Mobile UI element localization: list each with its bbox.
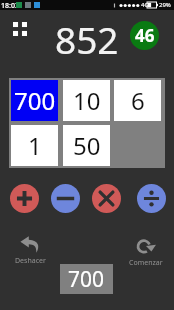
button[interactable]: 6 — [114, 80, 161, 121]
button[interactable]: 700 — [60, 264, 113, 294]
button[interactable]: 50 — [63, 125, 110, 166]
button[interactable]: Apps — [13, 22, 27, 36]
staticText: 10 — [73, 84, 101, 117]
staticText: 700 — [14, 84, 56, 117]
staticText: 50 — [73, 129, 101, 162]
button[interactable]: Multiply — [92, 184, 121, 213]
button[interactable]: 1 — [11, 125, 58, 166]
staticText: 18:03 — [1, 1, 19, 11]
button[interactable]: Comenzar — [125, 236, 167, 268]
button[interactable]: Deshacer — [9, 236, 51, 266]
button[interactable]: Subtract — [51, 184, 80, 213]
button[interactable]: 46 — [130, 21, 159, 50]
staticText: 852 — [55, 14, 119, 64]
button[interactable]: Add — [10, 184, 39, 213]
staticText: 6 — [131, 84, 145, 117]
button[interactable]: 700 — [11, 80, 58, 121]
staticText: 4G — [141, 1, 149, 9]
staticText: Comenzar — [129, 258, 163, 268]
staticText: 46 — [135, 24, 155, 47]
staticText: Deshacer — [15, 256, 46, 266]
button[interactable]: 10 — [63, 80, 110, 121]
staticText: 1 — [28, 129, 42, 162]
button[interactable]: Divide — [137, 184, 166, 213]
staticText: 29% — [159, 1, 171, 9]
staticText: 700 — [68, 265, 105, 294]
